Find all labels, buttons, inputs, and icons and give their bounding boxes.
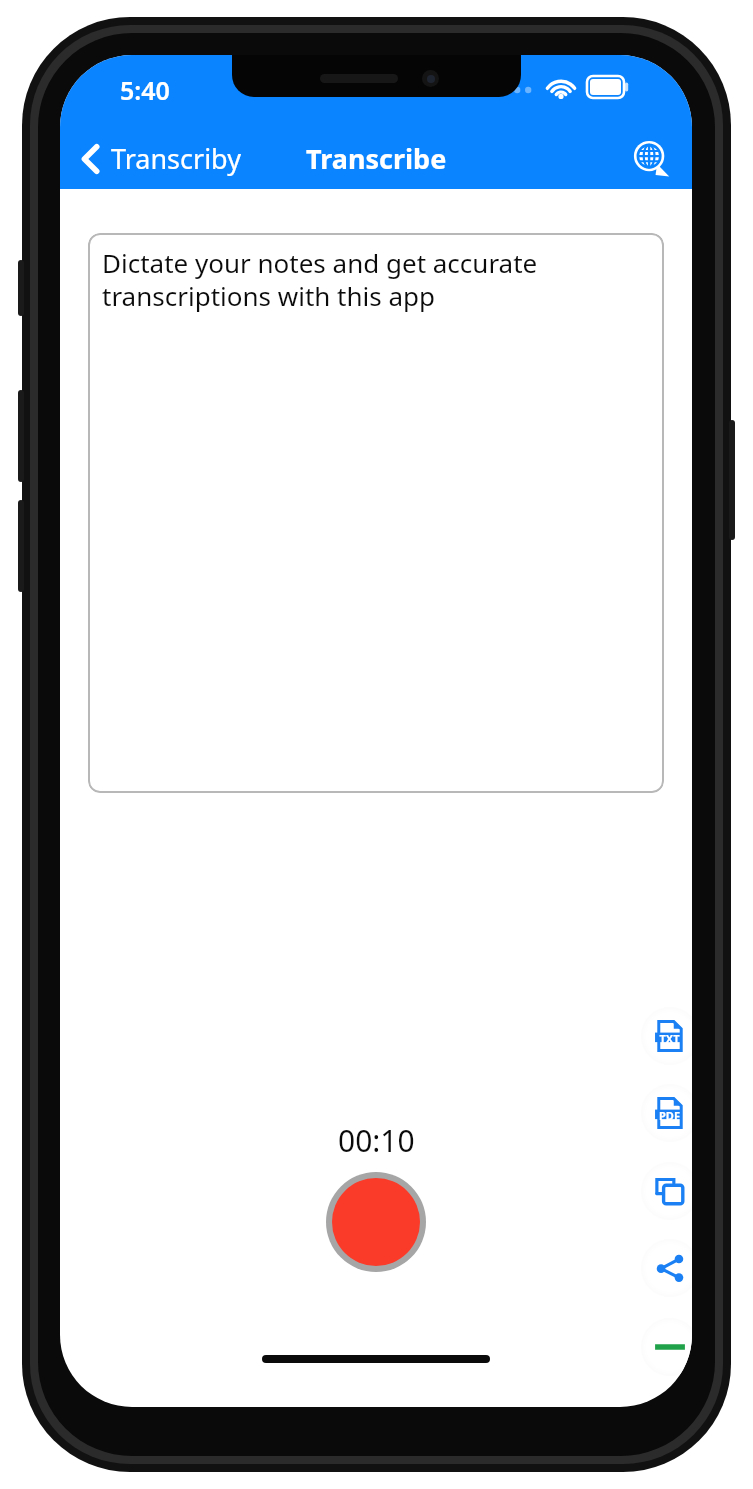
button[interactable]: Copy [641, 1162, 692, 1220]
button[interactable]: Export as TXT [641, 1007, 692, 1065]
button[interactable]: Dictate your notes and get accurate tran… [88, 233, 664, 793]
staticText: TXT [659, 1031, 680, 1046]
button[interactable]: Share [641, 1239, 692, 1297]
staticText: Transcribe [306, 140, 447, 177]
staticText: PDF [659, 1108, 680, 1123]
button[interactable]: Translate [620, 127, 682, 189]
staticText: 00:10 [338, 1120, 415, 1161]
staticText: Transcriby [111, 140, 241, 177]
button[interactable]: Minimize [641, 1318, 692, 1376]
button[interactable]: Stop recording [326, 1172, 426, 1272]
staticText: 5:40 [120, 73, 170, 107]
button[interactable]: Transcriby [60, 132, 253, 185]
button[interactable]: Export as PDF [641, 1084, 692, 1142]
staticText: Dictate your notes and get accurate tran… [102, 245, 650, 314]
